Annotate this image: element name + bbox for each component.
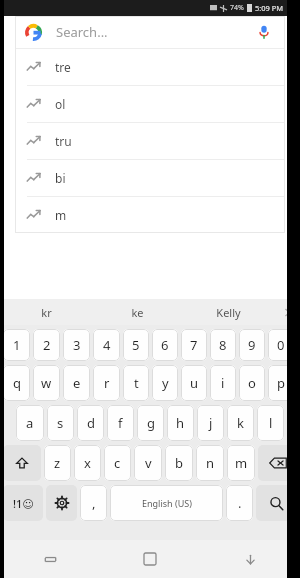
button[interactable]: c [104,445,131,481]
staticText: i [221,374,225,392]
button[interactable]: Search [256,485,297,521]
button[interactable]: a [16,405,44,441]
staticText: 6 [161,336,169,354]
button[interactable]: Home [100,540,200,578]
staticText: 2 [43,336,51,354]
button[interactable]: v [134,445,162,481]
staticText: p [277,374,285,392]
staticText: j [209,414,213,432]
staticText: 5:09 PM [255,3,284,13]
button[interactable]: tre [15,49,285,85]
button[interactable]: f [107,405,134,441]
staticText: 4 [103,336,111,354]
staticText: ke [131,305,144,320]
button[interactable]: t [123,365,149,401]
button[interactable]: l [257,405,284,441]
staticText: v [145,454,152,472]
button[interactable]: d [77,405,104,441]
button[interactable]: i [210,365,236,401]
button[interactable]: r [93,365,120,401]
staticText: 7 [190,336,198,354]
button[interactable]: . [226,485,253,521]
staticText: 74% [230,3,244,13]
staticText: tru [55,133,72,149]
staticText: tre [55,59,71,75]
staticText: y [162,374,169,392]
button[interactable]: n [196,445,224,481]
staticText: 9 [248,336,256,354]
button[interactable]: j [197,405,224,441]
staticText: f [118,414,123,432]
staticText: u [190,374,199,392]
staticText: 1 [13,336,21,354]
staticText: 8 [219,336,227,354]
button[interactable]: tru [15,123,285,159]
button[interactable]: o [239,365,265,401]
button[interactable]: k [227,405,254,441]
staticText: h [176,414,185,432]
staticText: . [238,494,242,512]
staticText: r [104,374,110,392]
staticText: 5 [132,336,140,354]
button[interactable]: English (US) [110,485,223,521]
button[interactable]: Hide keyboard [200,540,300,578]
staticText: b [175,454,183,472]
button[interactable]: Backspace [258,445,297,481]
staticText: ol [55,96,66,112]
staticText: kr [41,305,52,320]
button[interactable]: bi [15,160,285,196]
button[interactable]: 3 [63,329,90,361]
button[interactable]: Search... [15,16,285,48]
button[interactable]: w [33,365,60,401]
button[interactable]: 7 [181,329,207,361]
staticText: 0 [277,336,285,354]
staticText: o [248,374,256,392]
button[interactable]: m [227,445,255,481]
staticText: , [92,494,96,512]
button[interactable]: ol [15,86,285,122]
button[interactable]: g [137,405,164,441]
staticText: k [237,414,244,432]
button[interactable]: 0 [268,329,294,361]
button[interactable]: More suggestions [274,299,300,325]
button[interactable]: e [63,365,90,401]
button[interactable]: s [47,405,74,441]
staticText: e [73,374,81,392]
staticText: c [114,454,121,472]
button[interactable]: 2 [33,329,60,361]
button[interactable]: 5 [123,329,149,361]
staticText: x [84,454,91,472]
button[interactable]: 1 [3,329,30,361]
button[interactable]: Recents [0,540,100,578]
button[interactable]: 6 [152,329,178,361]
button[interactable]: x [74,445,101,481]
button[interactable]: Kelly [183,299,274,325]
staticText: m [235,454,248,472]
button[interactable]: 9 [239,329,265,361]
button[interactable]: 4 [93,329,120,361]
button[interactable]: z [44,445,71,481]
button[interactable]: Keyboard settings [46,485,77,521]
button[interactable]: 8 [210,329,236,361]
button[interactable]: kr [0,299,92,325]
button[interactable]: Voice search [253,21,275,43]
staticText: bi [55,170,66,186]
staticText: English (US) [142,497,192,509]
staticText: a [26,414,34,432]
button[interactable]: Shift [3,445,41,481]
staticText: g [147,414,155,432]
button[interactable]: Symbols [3,485,43,521]
staticText: d [87,414,95,432]
button[interactable]: q [3,365,30,401]
button[interactable]: h [167,405,194,441]
button[interactable]: y [152,365,178,401]
button[interactable]: ke [92,299,183,325]
staticText: n [206,454,215,472]
staticText: Kelly [216,305,241,320]
button[interactable]: u [181,365,207,401]
staticText: Search... [56,23,108,41]
button[interactable]: b [165,445,193,481]
button[interactable]: p [268,365,294,401]
button[interactable]: , [80,485,107,521]
button[interactable]: m [15,197,285,233]
